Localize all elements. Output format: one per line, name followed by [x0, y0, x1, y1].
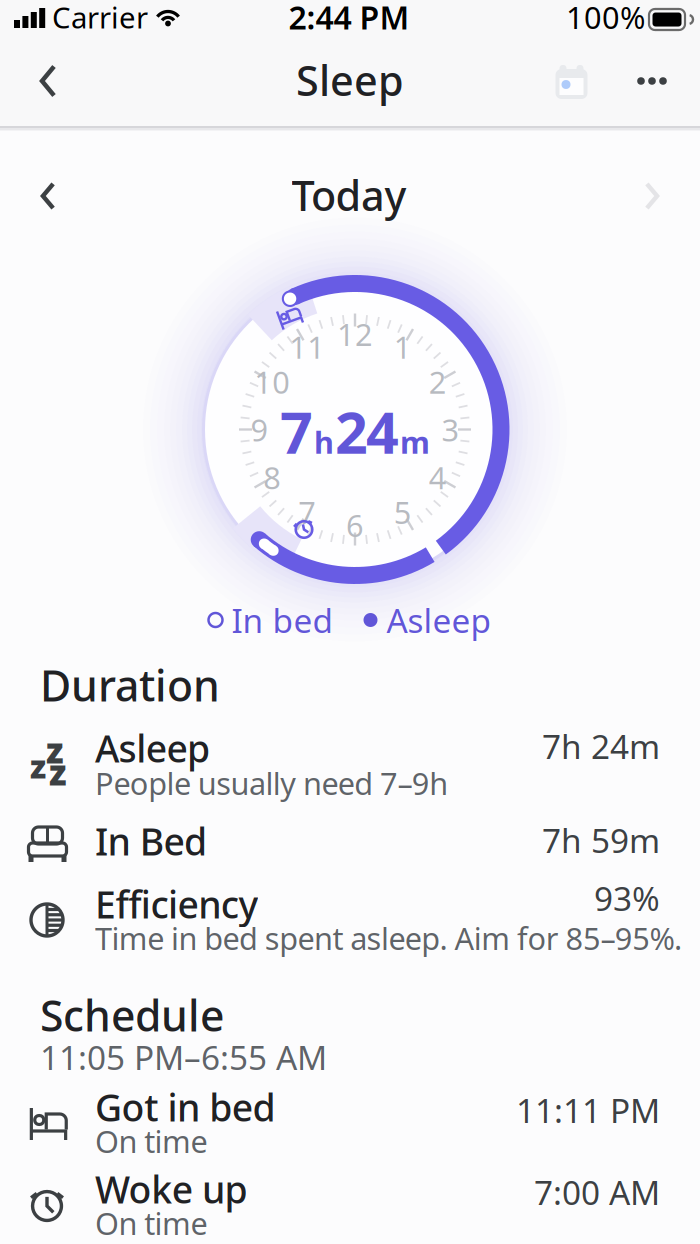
staticText: 5: [394, 492, 412, 532]
staticText: 7: [280, 393, 313, 469]
staticText: Sleep: [296, 53, 404, 107]
staticText: In bed: [231, 598, 333, 642]
staticText: Duration: [40, 657, 220, 713]
staticText: In Bed: [95, 816, 207, 866]
staticText: Time in bed spent asleep. Aim for 85–95%…: [95, 918, 682, 958]
staticText: 24: [335, 393, 399, 469]
button[interactable]: [549, 60, 593, 104]
button[interactable]: In bed: [208, 598, 333, 642]
staticText: 100%: [566, 0, 645, 37]
button[interactable]: [634, 73, 670, 89]
staticText: Schedule: [40, 987, 224, 1043]
button[interactable]: [26, 59, 70, 103]
staticText: m: [400, 421, 430, 462]
staticText: 1: [394, 326, 412, 367]
staticText: 7h 59m: [542, 818, 660, 862]
staticText: 93%: [594, 876, 660, 920]
staticText: Today: [291, 168, 406, 222]
staticText: 2: [429, 361, 447, 402]
staticText: 11:11 PM: [516, 1088, 660, 1132]
staticText: Efficiency: [95, 879, 258, 929]
staticText: 10: [254, 361, 290, 402]
staticText: Got in bed: [95, 1082, 275, 1132]
staticText: 9: [250, 409, 268, 450]
staticText: 2:44 PM: [288, 0, 409, 38]
staticText: 7: [298, 492, 316, 532]
staticText: 11: [289, 326, 325, 367]
staticText: 12: [337, 314, 373, 354]
staticText: 8: [263, 457, 281, 498]
staticText: z: [49, 749, 67, 795]
staticText: 11:05 PM–6:55 AM: [40, 1035, 327, 1079]
staticText: h: [314, 421, 334, 462]
staticText: Asleep: [95, 723, 210, 773]
staticText: On time: [95, 1121, 207, 1161]
staticText: 4: [429, 457, 447, 498]
staticText: People usually need 7–9h: [95, 763, 448, 803]
staticText: Carrier: [52, 0, 148, 36]
staticText: 6: [346, 505, 364, 545]
staticText: 7:00 AM: [534, 1170, 660, 1214]
button[interactable]: Asleep: [363, 598, 491, 642]
button[interactable]: [632, 174, 672, 218]
staticText: On time: [95, 1203, 207, 1243]
staticText: 3: [441, 409, 459, 450]
button[interactable]: [28, 174, 68, 218]
staticText: z: [30, 745, 46, 787]
staticText: 7h 24m: [542, 724, 660, 768]
staticText: z: [46, 727, 64, 773]
staticText: Woke up: [95, 1164, 248, 1214]
staticText: Asleep: [386, 598, 491, 642]
